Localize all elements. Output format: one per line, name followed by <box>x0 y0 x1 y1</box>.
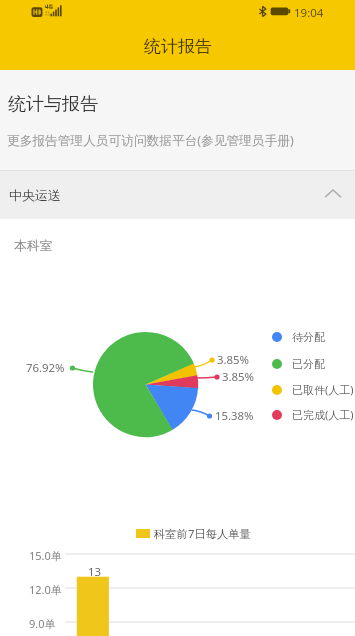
staticText: 19:04 <box>294 5 324 21</box>
staticText: 已取件(人工) <box>292 382 354 397</box>
staticText: 76.92% <box>26 360 65 376</box>
staticText: 15.0单 <box>29 548 62 563</box>
staticText: 9.0单 <box>29 616 56 631</box>
staticText: 待分配 <box>292 330 325 344</box>
staticText: 中央运送 <box>9 187 61 203</box>
staticText: 已完成(人工) <box>292 407 354 422</box>
staticText: 已分配 <box>292 357 325 371</box>
staticText: 统计报告 <box>144 36 212 57</box>
staticText: 科室前7日每人单量 <box>154 526 251 541</box>
button[interactable]: 中央运送 <box>0 171 355 219</box>
staticText: 3.85% <box>217 352 250 368</box>
staticText: 12.0单 <box>29 582 62 597</box>
staticText: 统计与报告 <box>8 93 98 116</box>
other: Collapse <box>323 185 343 205</box>
staticText: 本科室 <box>14 238 53 254</box>
staticText: 更多报告管理人员可访问数据平台(参见管理员手册) <box>7 131 294 148</box>
staticText: 3.85% <box>222 369 255 385</box>
staticText: 13 <box>88 564 102 580</box>
staticText: 15.38% <box>215 408 254 424</box>
